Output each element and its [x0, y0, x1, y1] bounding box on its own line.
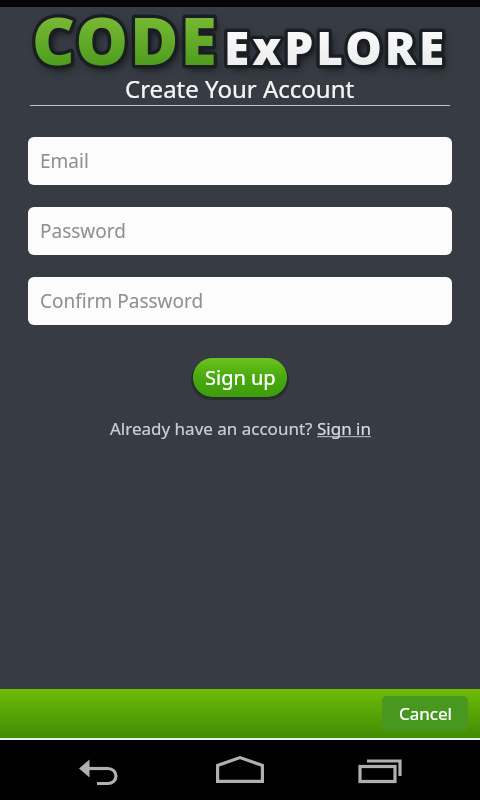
button[interactable]: Sign in [317, 417, 371, 440]
button[interactable] [78, 757, 122, 785]
button[interactable]: Cancel [382, 696, 468, 731]
button[interactable]: Password [28, 207, 452, 255]
staticText: CODE [32, 0, 219, 84]
staticText: Confirm Password [40, 288, 204, 314]
button[interactable]: Confirm Password [28, 277, 452, 325]
button[interactable] [216, 756, 264, 783]
staticText: Already have an account? [110, 417, 317, 440]
staticText: Sign up [205, 364, 276, 391]
staticText: Email [40, 148, 89, 174]
staticText: Password [40, 218, 126, 244]
staticText: Create Your Account [125, 72, 355, 105]
staticText: ExPLORE [224, 16, 448, 79]
staticText: ExPLORE [224, 16, 448, 79]
staticText: CODE [32, 0, 219, 84]
button[interactable]: Sign up [193, 358, 287, 397]
button[interactable]: Email [28, 137, 452, 185]
staticText: Cancel [399, 702, 452, 725]
button[interactable] [358, 758, 404, 783]
